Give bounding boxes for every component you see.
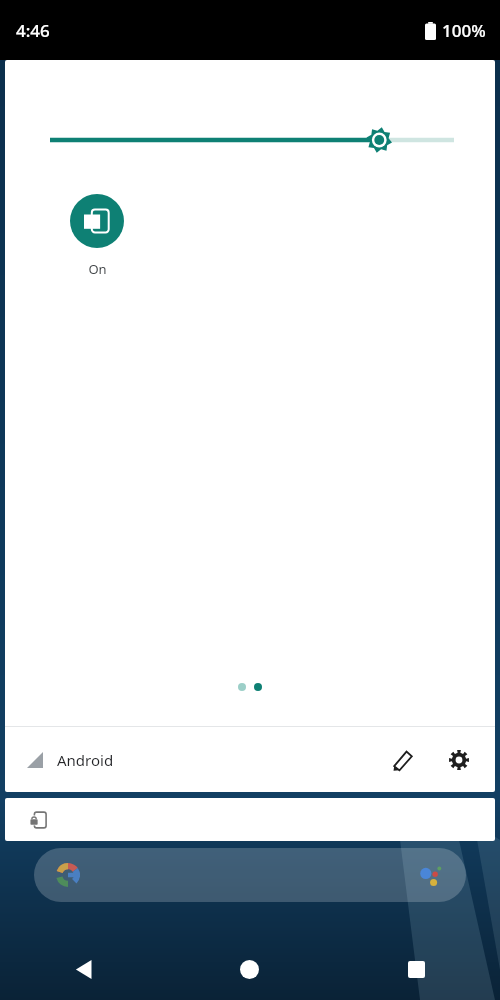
button[interactable]: Back — [0, 938, 166, 1000]
button[interactable] — [238, 683, 246, 691]
button[interactable]: Home — [166, 938, 333, 1000]
button[interactable]: On — [47, 194, 147, 278]
staticText: Android — [57, 750, 114, 770]
button[interactable]: Android — [27, 750, 377, 770]
button[interactable]: Settings — [435, 734, 483, 786]
button[interactable] — [5, 798, 495, 841]
button[interactable] — [254, 683, 262, 691]
staticText: On — [88, 260, 107, 278]
button[interactable]: Edit — [377, 734, 429, 786]
staticText: 100% — [442, 19, 486, 42]
button[interactable] — [34, 848, 466, 902]
staticText: 4:46 — [16, 19, 50, 42]
button[interactable]: Brightness — [5, 118, 495, 162]
button[interactable]: Recents — [333, 938, 500, 1000]
